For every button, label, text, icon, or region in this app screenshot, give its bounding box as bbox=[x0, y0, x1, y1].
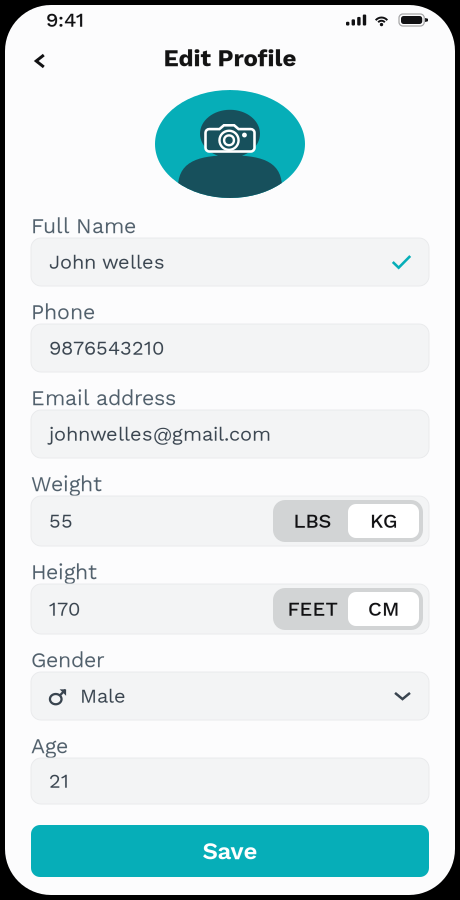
staticText: Save bbox=[202, 837, 257, 865]
staticText: Email address bbox=[31, 385, 176, 410]
staticText: 55 bbox=[49, 509, 73, 533]
staticText: Weight bbox=[31, 471, 102, 496]
staticText: John welles bbox=[49, 250, 165, 274]
staticText: 9876543210 bbox=[49, 336, 164, 360]
staticText: CM bbox=[368, 597, 399, 621]
staticText: Height bbox=[31, 559, 97, 584]
button[interactable]: KG bbox=[348, 504, 419, 538]
button[interactable]: LBS bbox=[277, 504, 348, 538]
staticText: KG bbox=[370, 509, 397, 533]
staticText: Male bbox=[80, 684, 126, 708]
staticText: LBS bbox=[293, 509, 331, 533]
button[interactable]: FEET bbox=[277, 592, 348, 626]
button[interactable]: Male bbox=[31, 672, 429, 735]
button[interactable]: CM bbox=[348, 592, 419, 626]
staticText: Edit Profile bbox=[163, 44, 296, 72]
staticText: Full Name bbox=[31, 213, 136, 238]
staticText: johnwelles@gmail.com bbox=[49, 422, 271, 446]
staticText: Age bbox=[31, 733, 68, 758]
staticText: Gender bbox=[31, 647, 105, 672]
staticText: 170 bbox=[49, 597, 80, 621]
staticText: 9:41 bbox=[46, 8, 84, 32]
staticText: Phone bbox=[31, 299, 95, 324]
button[interactable]: Change profile photo bbox=[155, 90, 305, 198]
staticText: FEET bbox=[287, 597, 337, 621]
button[interactable]: Save bbox=[31, 825, 429, 877]
staticText: 21 bbox=[49, 769, 69, 793]
button[interactable]: Back bbox=[25, 41, 55, 74]
